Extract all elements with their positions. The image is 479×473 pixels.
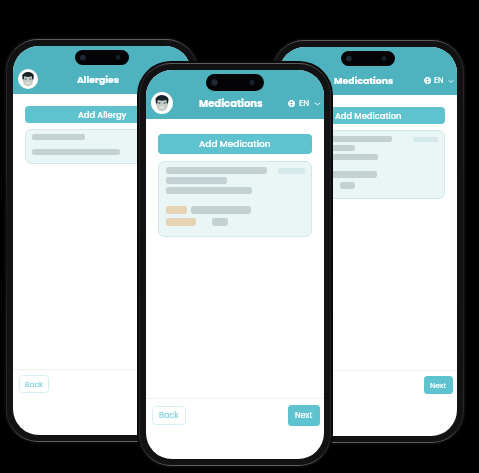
staticText: EN [434,75,444,86]
button[interactable]: Next [288,405,320,426]
button[interactable]: Language: EN [424,75,454,86]
staticText: Next [295,410,313,421]
button[interactable] [25,129,179,164]
staticText: Next [430,380,447,390]
staticText: Add Medication [199,138,271,151]
staticText: Back [159,410,179,421]
button[interactable]: Back [152,406,186,425]
staticText: Allergies [77,73,120,86]
button[interactable] [158,161,312,237]
button[interactable]: Back [19,375,49,393]
button[interactable]: Add Medication [291,107,445,124]
staticText: Add Medication [335,110,402,122]
button[interactable]: Profile [151,92,173,114]
button[interactable]: Add Medication [158,134,312,154]
button[interactable]: Profile [18,69,38,89]
staticText: Add Allergy [78,109,127,121]
button[interactable]: Add Allergy [25,106,179,123]
staticText: EN [299,97,310,109]
button[interactable] [291,130,445,199]
button[interactable]: Next [424,376,453,394]
staticText: Medications [199,96,263,110]
staticText: Medications [334,74,394,87]
staticText: Back [25,379,43,389]
button[interactable]: Language: EN [288,97,321,109]
